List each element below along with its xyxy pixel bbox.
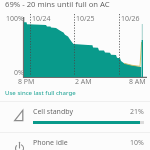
other: Cell standby (14, 110, 25, 121)
staticText: Use since last full charge (5, 88, 76, 96)
button[interactable]: Cell standby (0, 101, 150, 130)
staticText: Phone idle (33, 138, 68, 148)
staticText: 21% (130, 107, 144, 117)
staticText: 69% - 20 mins until full on AC (5, 0, 110, 9)
button[interactable]: Phone idle (0, 132, 150, 150)
staticText: 10/26 (121, 14, 140, 24)
staticText: 2 AM (75, 77, 92, 87)
staticText: 10% (130, 138, 144, 148)
staticText: Cell standby (33, 107, 73, 117)
staticText: 10/25 (76, 14, 95, 24)
staticText: 8 AM (129, 77, 146, 87)
staticText: 8 PM (18, 77, 35, 87)
staticText: 0% (14, 68, 24, 78)
staticText: 10/24 (32, 14, 51, 24)
staticText: 100% (6, 14, 24, 24)
other: Phone idle (14, 142, 25, 150)
